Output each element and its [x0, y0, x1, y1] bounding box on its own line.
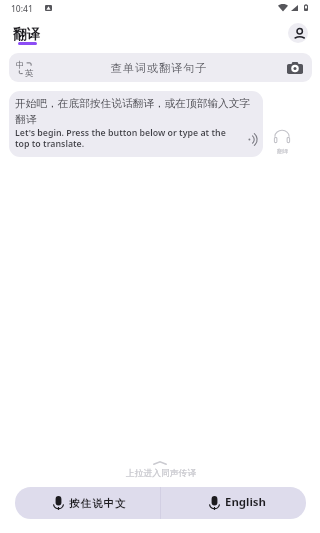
staticText: 中 [16, 60, 25, 71]
button[interactable]: Swap languages [9, 53, 312, 82]
button[interactable]: 按住说中文 [15, 487, 160, 519]
button[interactable]: Play audio [243, 130, 261, 148]
button[interactable]: Camera [277, 53, 312, 82]
staticText: 10:41 [11, 3, 33, 15]
staticText: 查单词或翻译句子 [41, 61, 277, 75]
staticText: 翻译 [13, 26, 41, 43]
staticText: 英 [25, 68, 34, 79]
staticText: Let's begin. Press the button below or t… [15, 127, 253, 150]
staticText: 上拉进入同声传译 [111, 468, 211, 479]
staticText: English [225, 494, 266, 510]
button[interactable]: 上拉进入同声传译 [110, 458, 210, 480]
staticText: 开始吧，在底部按住说话翻译，或在顶部输入文字翻译 [15, 97, 253, 126]
staticText: 翻译 [277, 148, 289, 155]
button[interactable]: English [161, 487, 306, 519]
button[interactable]: Conversation translate [270, 128, 294, 156]
button[interactable]: 开始吧，在底部按住说话翻译，或在顶部输入文字翻译 [9, 91, 263, 157]
button[interactable]: Account [288, 23, 308, 43]
staticText: 按住说中文 [69, 497, 127, 510]
button[interactable]: Swap languages [9, 53, 41, 82]
